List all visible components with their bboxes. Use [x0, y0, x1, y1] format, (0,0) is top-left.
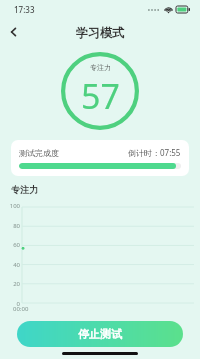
staticText: 80 [0, 222, 20, 230]
button[interactable]: 测试完成度 [11, 140, 189, 176]
staticText: 学习模式 [76, 25, 124, 40]
staticText: 57 [81, 73, 120, 119]
staticText: 40 [0, 261, 20, 269]
staticText: 100 [0, 202, 20, 210]
staticText: 00:00 [13, 305, 29, 313]
staticText: 60 [0, 241, 20, 249]
staticText: 20 [0, 280, 20, 288]
staticText: 倒计时：07:55 [128, 147, 181, 158]
staticText: 专注力 [90, 63, 111, 72]
button[interactable]: Back [0, 18, 28, 46]
button[interactable]: 停止测试 [17, 321, 183, 347]
staticText: 专注力 [11, 184, 38, 195]
staticText: 测试完成度 [19, 148, 59, 158]
staticText: 0 [0, 300, 20, 308]
staticText: 17:33 [14, 4, 35, 15]
staticText: 停止测试 [78, 327, 122, 341]
